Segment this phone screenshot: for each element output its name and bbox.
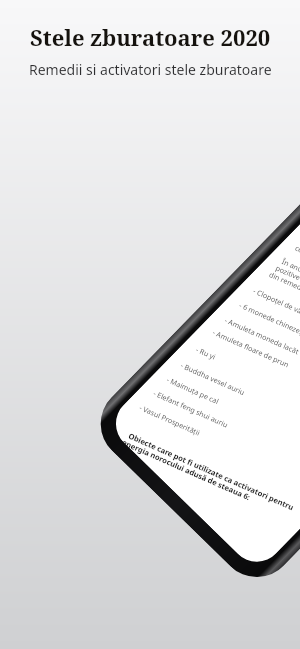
staticText: În anul 2020 sunt urmatoarele activari [278, 224, 300, 350]
staticText: pozitive a stelelor zburatoare, ajutate [272, 231, 300, 354]
staticText: din remediile feng shui: [265, 249, 300, 330]
staticText: energia norocului adusă de steaua 6: [121, 402, 254, 534]
staticText: - Vasul Prosperității [135, 386, 205, 454]
staticText: Obiecte care pot fi utilizate ca activat… [124, 385, 298, 557]
staticText: Remedii si activatori stele zburatoare [29, 60, 272, 79]
staticText: cea mai buna pozitie pentru activare [291, 212, 300, 332]
staticText: Stele zburatoare 2020 [30, 22, 271, 52]
staticText: - Elefant feng shui auriu [149, 368, 233, 450]
staticText: - Maimuța pe cal [163, 360, 223, 420]
staticText: - Ru yi [192, 339, 220, 367]
staticText: - Amuleta floare de prun [209, 306, 294, 390]
button[interactable]: App screenshot preview [105, 98, 300, 573]
staticText: - Amuleta moneda lacăt [221, 295, 300, 377]
staticText: - Clopoțel de vânt cu 6 tuburi [249, 261, 300, 359]
staticText: - Buddha vesel auriu [177, 342, 250, 415]
staticText: - 6 monede chinezești [235, 281, 300, 357]
